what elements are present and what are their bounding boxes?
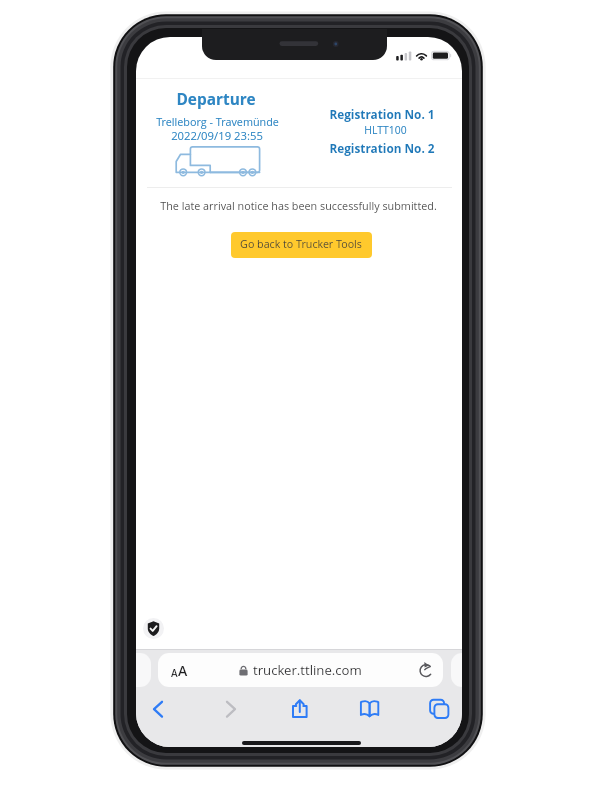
staticText: A xyxy=(178,661,188,680)
button[interactable]: Forward xyxy=(214,693,248,727)
staticText: 2022/09/19 23:55 xyxy=(171,128,263,143)
button[interactable]: Reload xyxy=(415,659,437,681)
button[interactable]: Page settings xyxy=(166,656,192,684)
staticText: Trelleborg - Travemünde xyxy=(156,114,279,129)
staticText: The late arrival notice has been success… xyxy=(160,198,437,213)
staticText: Registration No. 1 xyxy=(329,106,435,122)
button[interactable] xyxy=(231,232,372,258)
staticText: Go back to Trucker Tools xyxy=(240,237,362,252)
button[interactable]: trucker.ttline.com xyxy=(158,653,443,687)
staticText: HLTT100 xyxy=(364,123,407,137)
button[interactable]: Tabs xyxy=(422,693,456,727)
staticText: A xyxy=(171,666,178,680)
staticText: Registration No. 2 xyxy=(329,140,435,156)
button[interactable]: Back xyxy=(141,693,175,727)
staticText: trucker.ttline.com xyxy=(253,661,362,679)
button[interactable]: Share xyxy=(282,693,316,727)
button[interactable]: Bookmarks xyxy=(353,693,387,727)
staticText: Departure xyxy=(176,89,256,110)
button[interactable]: Privacy report xyxy=(143,618,164,639)
